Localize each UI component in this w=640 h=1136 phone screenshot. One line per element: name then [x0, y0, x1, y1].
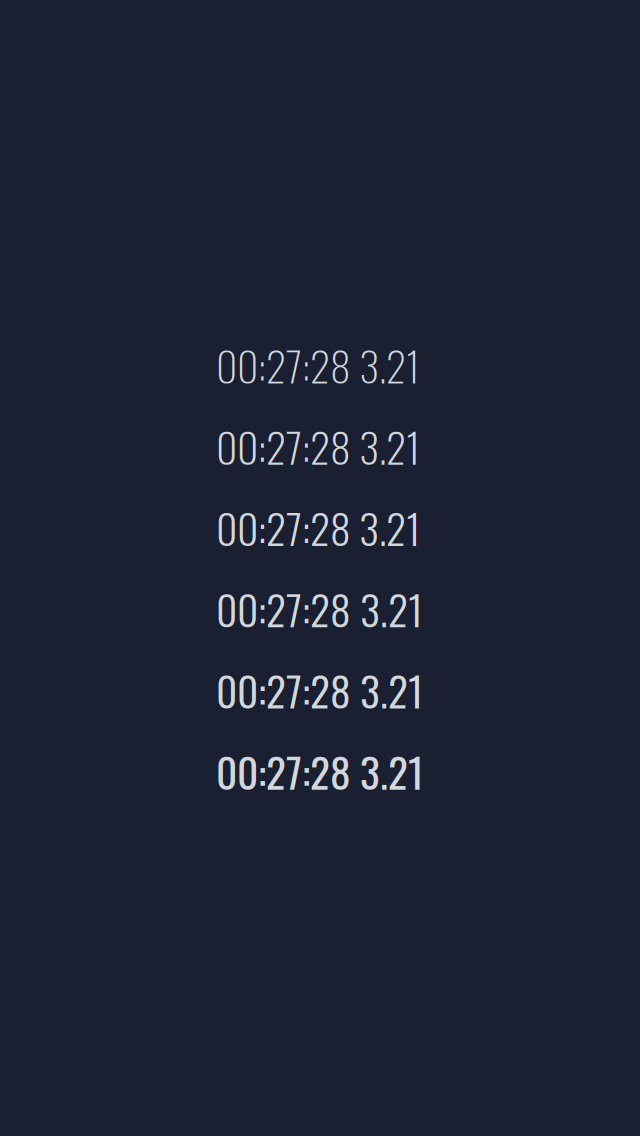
staticText: 00:27:28 3.21 — [216, 334, 420, 395]
staticText: 00:27:28 3.21 — [216, 578, 423, 639]
staticText: 00:27:28 3.21 — [216, 497, 420, 558]
staticText: 00:27:28 3.21 — [216, 740, 424, 802]
staticText: 00:27:28 3.21 — [216, 659, 423, 721]
staticText: 00:27:28 3.21 — [216, 415, 420, 477]
